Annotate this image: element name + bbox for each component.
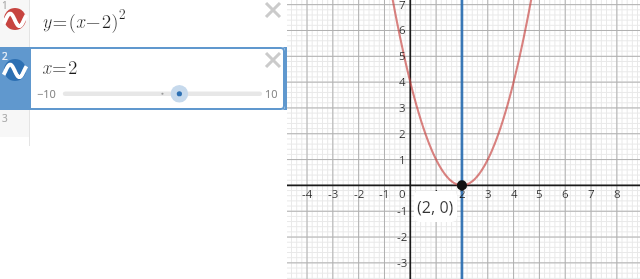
staticText: 3 — [399, 100, 406, 116]
staticText: 5 — [399, 48, 406, 64]
staticText: −10 — [37, 86, 56, 101]
staticText: 0 — [399, 186, 406, 202]
staticText: 7 — [399, 0, 406, 13]
staticText: 2 — [399, 126, 406, 142]
button[interactable]: Expression 2 — [29, 47, 285, 110]
staticText: 10 — [265, 86, 278, 101]
staticText: (2, 0) — [417, 196, 454, 218]
staticText: 6 — [562, 186, 569, 202]
button[interactable]: Delete expression 1 — [260, 0, 286, 23]
staticText: 2 — [459, 186, 466, 202]
staticText: 1 — [2, 0, 8, 12]
staticText: -2 — [354, 186, 365, 202]
staticText: 3 — [2, 111, 8, 125]
staticText: -1 — [379, 186, 390, 202]
staticText: -3 — [397, 255, 408, 271]
staticText: -3 — [328, 186, 339, 202]
button[interactable]: Expression 1 — [0, 0, 287, 47]
button[interactable]: Slider value — [53, 81, 272, 105]
staticText: 8 — [614, 186, 621, 202]
button[interactable]: (2, 0) — [414, 191, 457, 222]
staticText: 4 — [399, 74, 406, 90]
staticText: 1 — [399, 152, 406, 168]
staticText: 1 — [433, 186, 440, 202]
staticText: 7 — [588, 186, 595, 202]
staticText: 4 — [511, 186, 518, 202]
staticText: 3 — [485, 186, 492, 202]
staticText: x = 2 — [42, 53, 78, 80]
staticText: y = (x − 2)2 — [42, 3, 126, 33]
staticText: -4 — [302, 186, 313, 202]
staticText: -1 — [397, 203, 408, 219]
staticText: 5 — [536, 186, 543, 202]
button[interactable]: Delete expression 2 — [260, 47, 286, 73]
staticText: -2 — [397, 229, 408, 245]
staticText: 2 — [2, 49, 8, 63]
staticText: 6 — [399, 22, 406, 38]
